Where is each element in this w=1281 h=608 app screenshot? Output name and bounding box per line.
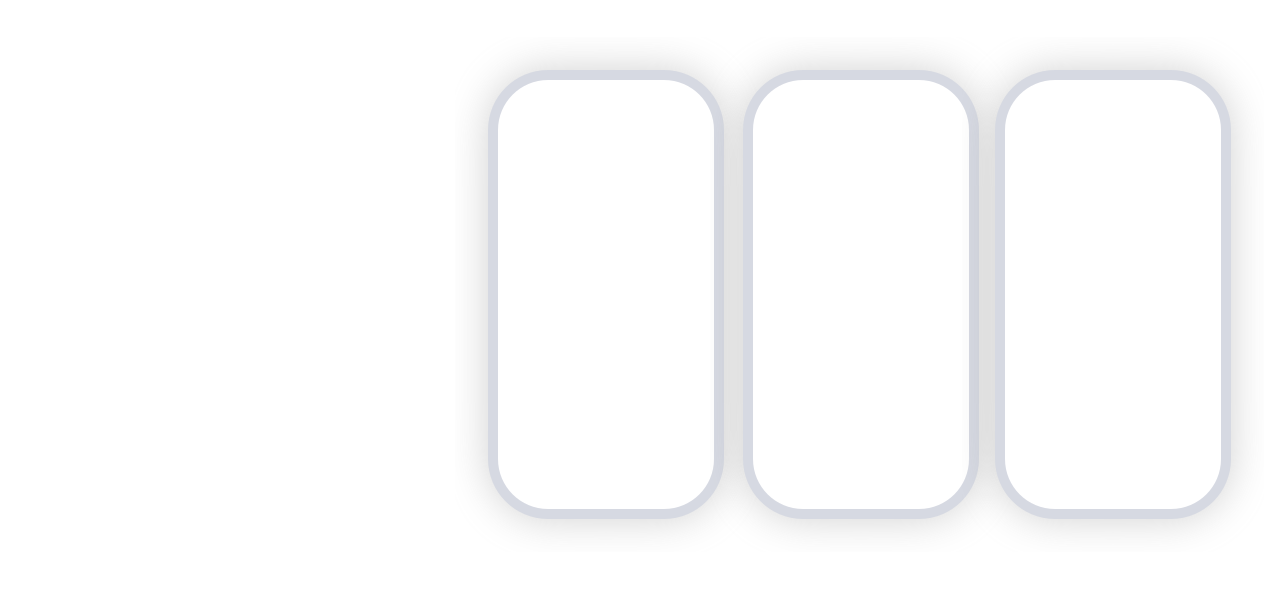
button[interactable]: Second card: [748, 75, 974, 514]
button[interactable]: Third card: [1000, 75, 1226, 514]
button[interactable]: First card: [493, 75, 719, 514]
